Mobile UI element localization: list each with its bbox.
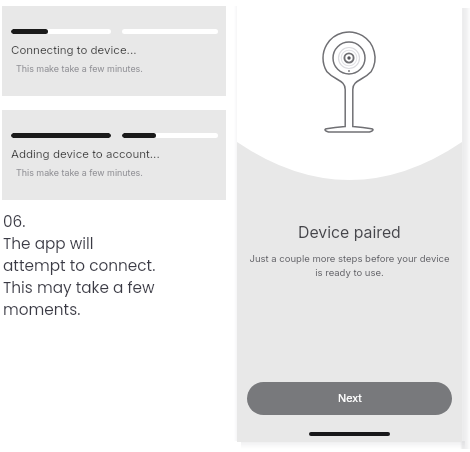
staticText: Device paired: [298, 223, 401, 242]
staticText: 06. The app will attempt to connect. Thi…: [3, 211, 156, 321]
staticText: Adding device to account...: [11, 147, 160, 161]
button[interactable]: Next: [247, 382, 452, 415]
other: Home indicator: [309, 432, 390, 436]
staticText: This make take a few minutes.: [16, 167, 143, 178]
staticText: Connecting to device...: [11, 43, 137, 57]
button[interactable]: Connecting to device...: [2, 6, 226, 96]
staticText: Next: [338, 392, 362, 405]
staticText: This make take a few minutes.: [16, 63, 143, 74]
staticText: Just a couple more steps before your dev…: [249, 253, 450, 279]
button[interactable]: Adding device to account...: [2, 110, 226, 200]
